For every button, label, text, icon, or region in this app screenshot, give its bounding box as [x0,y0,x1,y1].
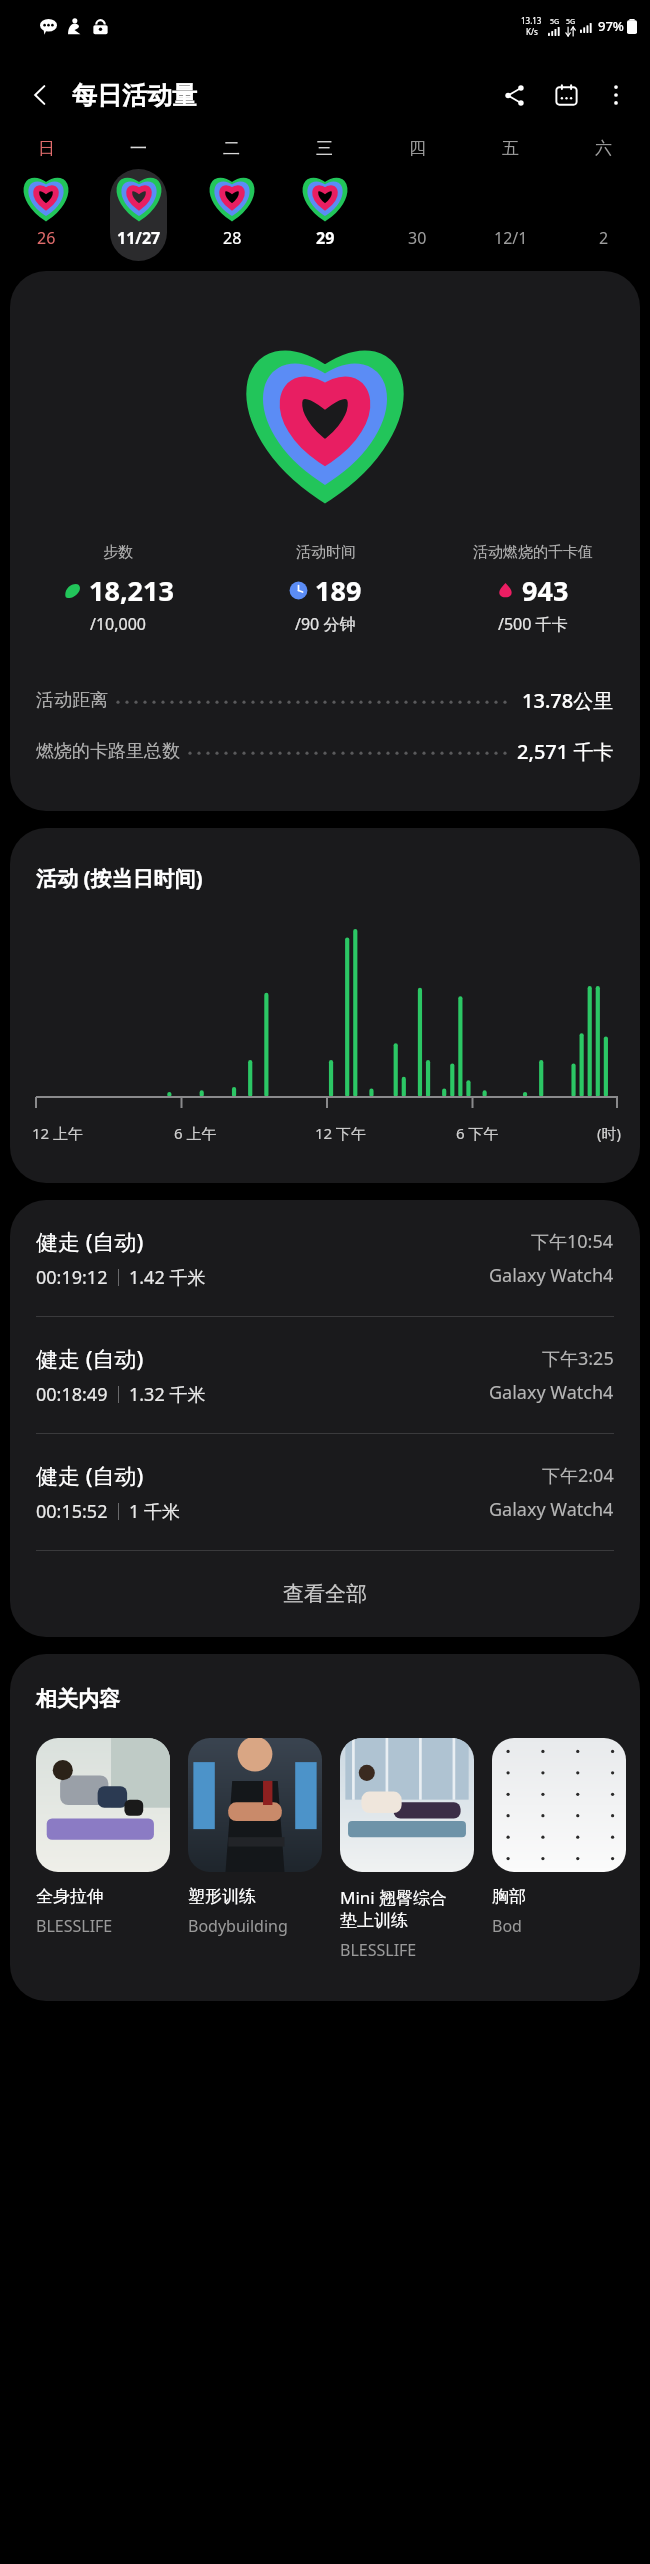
button[interactable]: 健走 (自动) [10,1317,640,1433]
button[interactable]: 12/1 [464,169,557,261]
staticText: 2,571 千卡 [517,738,614,765]
staticText: 活动燃烧的千卡值 [473,543,593,562]
staticText: 活动距离 [36,689,108,712]
staticText: 13.78公里 [522,687,614,714]
staticText: 步数 [103,543,133,562]
staticText: 六 [595,138,612,159]
staticText: 6 上午 [174,1123,217,1143]
staticText: 活动 (按当日时间) [36,864,203,893]
staticText: 下午2:04 [542,1463,614,1488]
staticText: /500 千卡 [498,613,568,635]
staticText: BLESSLIFE [340,1939,417,1961]
staticText: 下午10:54 [531,1229,614,1254]
button[interactable]: 30 [371,169,464,261]
staticText: 30 [408,227,427,249]
button[interactable]: 活动时间 [222,543,429,635]
staticText: 1.32 千米 [129,1382,206,1407]
staticText: K/s [526,26,538,37]
button[interactable]: 29 [278,169,371,261]
staticText: 2 [599,227,609,249]
staticText: /90 分钟 [295,613,356,635]
staticText: 1.42 千米 [129,1265,206,1290]
staticText: 全身拉伸 [36,1886,104,1907]
staticText: 5G [550,17,560,27]
staticText: Bod [492,1915,522,1937]
button[interactable]: 步数 [14,543,222,635]
staticText: 四 [409,138,426,159]
staticText: 日 [38,138,55,159]
button[interactable]: 活动距离 [36,687,614,714]
button[interactable]: 2 [557,169,650,261]
button[interactable]: 活动 (按当日时间) [10,828,640,1183]
button[interactable]: 28 [185,169,278,261]
staticText: 12 上午 [32,1123,84,1143]
staticText: 18,213 [89,572,174,609]
button[interactable]: 11/27 [92,169,185,261]
staticText: Bodybuilding [188,1915,288,1937]
button[interactable]: 26 [0,169,92,261]
staticText: /10,000 [90,613,147,635]
button[interactable]: 健走 (自动) [10,1200,640,1316]
staticText: 26 [37,227,56,249]
staticText: 5G [566,17,576,27]
staticText: Galaxy Watch4 [489,1497,614,1522]
staticText: Galaxy Watch4 [489,1263,614,1288]
staticText: 1 千米 [129,1499,180,1524]
button[interactable]: 胸部 [492,1738,626,1937]
staticText: 五 [502,138,519,159]
staticText: 13.13 [521,15,542,26]
staticText: 00:15:52 [36,1499,108,1524]
staticText: 燃烧的卡路里总数 [36,740,180,763]
staticText: 29 [316,227,335,249]
staticText: 健走 (自动) [36,1343,144,1373]
button[interactable]: 步数 [10,271,640,811]
button[interactable]: More options [592,71,640,119]
staticText: 二 [223,138,240,159]
staticText: 189 [315,572,362,609]
button[interactable]: 健走 (自动) [10,1434,640,1550]
button[interactable]: Calendar [540,69,592,121]
staticText: BLESSLIFE [36,1915,113,1937]
staticText: Galaxy Watch4 [489,1380,614,1405]
staticText: 下午3:25 [542,1346,614,1371]
button[interactable]: 查看全部 [10,1551,640,1637]
staticText: 12/1 [494,227,528,249]
staticText: (时) [597,1123,622,1143]
button[interactable]: 全身拉伸 [36,1738,170,1937]
staticText: 三 [316,138,333,159]
staticText: 28 [223,227,242,249]
staticText: 6 下午 [456,1123,499,1143]
staticText: 塑形训练 [188,1886,256,1907]
staticText: 查看全部 [283,1581,367,1607]
button[interactable]: 燃烧的卡路里总数 [36,738,614,765]
staticText: 活动时间 [296,543,356,562]
staticText: 一 [130,138,147,159]
staticText: 相关内容 [36,1686,120,1712]
staticText: Mini 翘臀综合 垫上训练 [340,1886,448,1931]
staticText: 00:18:49 [36,1382,108,1407]
staticText: 11/27 [117,227,161,249]
button[interactable]: 塑形训练 [188,1738,322,1937]
button[interactable]: Back [14,69,66,121]
button[interactable]: Share [488,69,540,121]
staticText: 胸部 [492,1886,526,1907]
staticText: 97% [598,17,624,35]
staticText: 00:19:12 [36,1265,108,1290]
staticText: 健走 (自动) [36,1226,144,1256]
button[interactable]: 活动燃烧的千卡值 [429,543,636,635]
staticText: 12 下午 [315,1123,367,1143]
staticText: 每日活动量 [72,80,197,111]
button[interactable]: Mini 翘臀综合 垫上训练 [340,1738,474,1961]
staticText: 943 [522,572,569,609]
staticText: 健走 (自动) [36,1460,144,1490]
